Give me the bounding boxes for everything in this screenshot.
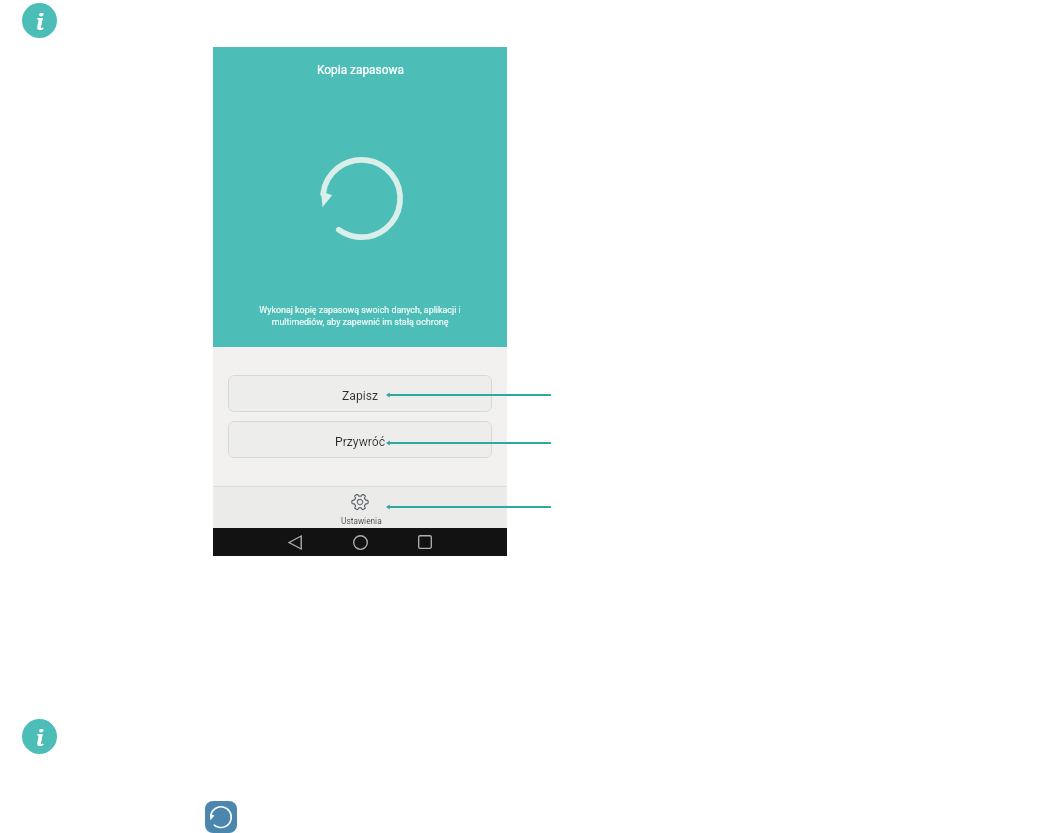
button[interactable]: Information: [22, 719, 57, 754]
button[interactable]: Recents: [411, 528, 439, 556]
button[interactable]: Zapisz: [228, 375, 492, 412]
button[interactable]: Przywróć: [228, 421, 492, 458]
staticText: i: [36, 722, 44, 752]
staticText: Ustawienia: [341, 516, 382, 526]
button[interactable]: Information: [22, 3, 57, 38]
button[interactable]: Home: [346, 528, 374, 556]
staticText: Przywróć: [335, 435, 386, 449]
button[interactable]: Backup app icon: [205, 801, 237, 833]
staticText: Zapisz: [342, 389, 379, 403]
staticText: Kopia zapasowa: [317, 63, 404, 77]
button[interactable]: Ustawienia: [213, 486, 507, 526]
staticText: Wykonaj kopię zapasową swoich danych, ap…: [254, 305, 466, 327]
button[interactable]: Back: [281, 528, 309, 556]
staticText: i: [36, 6, 44, 36]
